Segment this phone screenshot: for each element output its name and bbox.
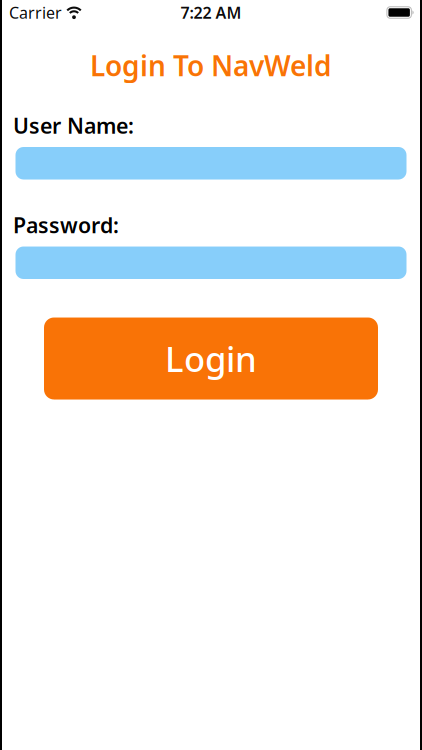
staticText: Login To NavWeld [90,47,332,84]
staticText: 7:22 AM [180,2,241,23]
textField[interactable]: User Name [15,148,406,178]
staticText: Login [165,335,257,381]
staticText: Carrier [9,2,62,23]
staticText: User Name: [13,111,134,140]
staticText: Password: [13,211,119,239]
textField[interactable]: Password [15,248,406,278]
button[interactable]: Login [44,317,378,399]
